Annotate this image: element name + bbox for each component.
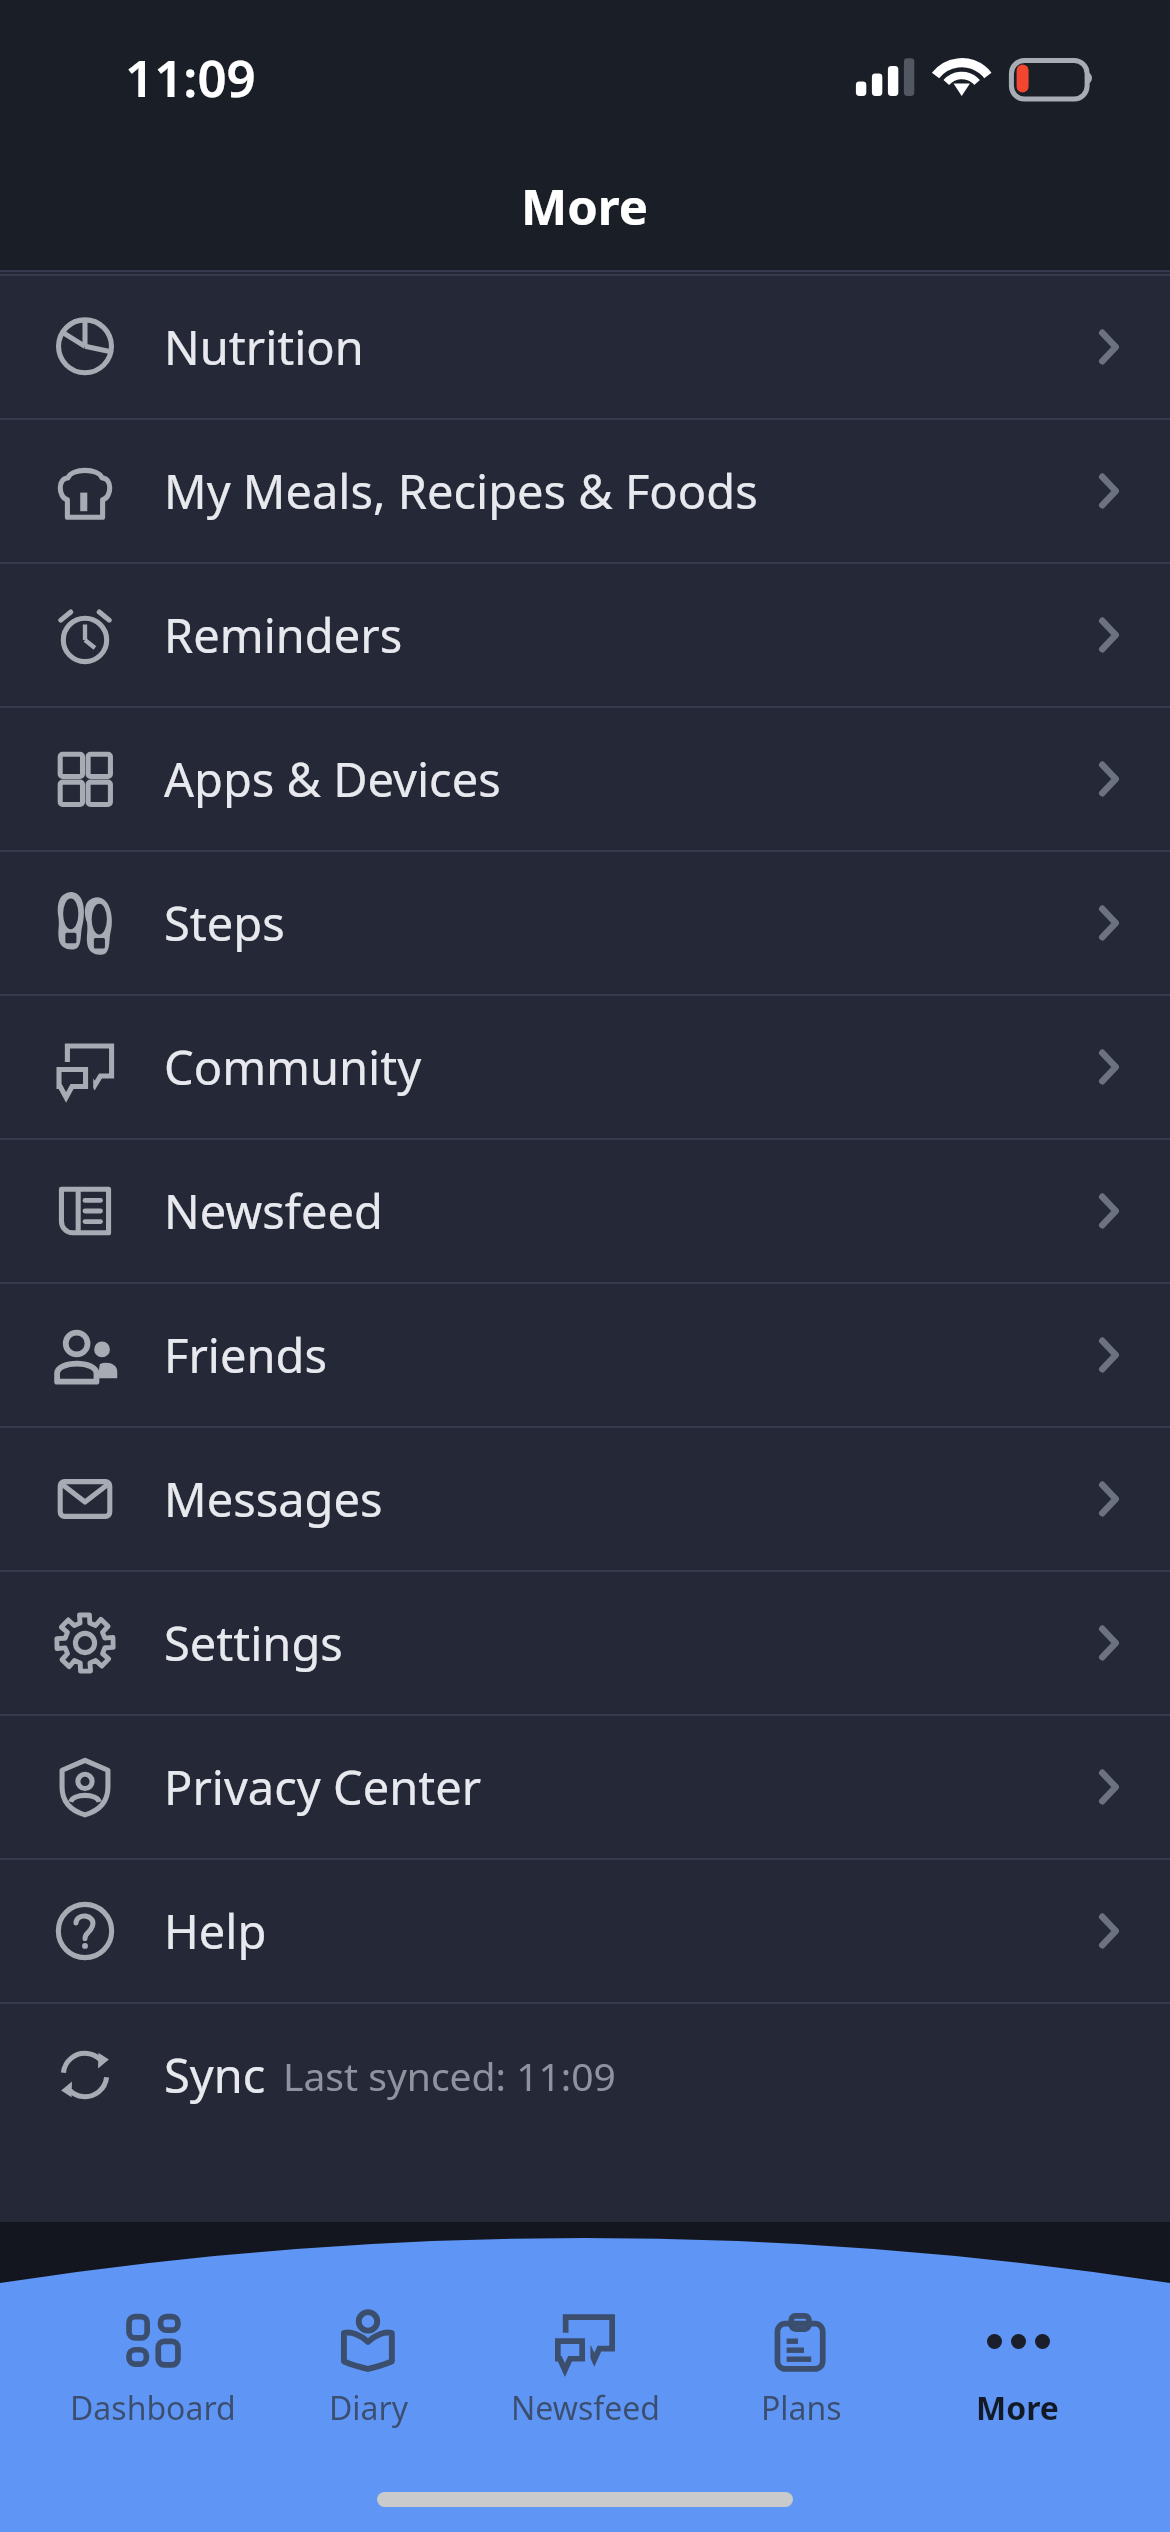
staticText: Diary <box>329 2386 409 2430</box>
button[interactable]: Friends <box>0 1284 1170 1426</box>
button[interactable]: Help <box>0 1860 1170 2002</box>
button[interactable]: Steps <box>0 852 1170 994</box>
staticText: Steps <box>164 891 285 955</box>
staticText: 11:09 <box>125 42 256 111</box>
button[interactable]: Apps & Devices <box>0 708 1170 850</box>
staticText: More <box>521 173 649 240</box>
button[interactable]: Nutrition <box>0 276 1170 418</box>
button[interactable]: Reminders <box>0 564 1170 706</box>
button[interactable]: Settings <box>0 1572 1170 1714</box>
button[interactable]: My Meals, Recipes & Foods <box>0 420 1170 562</box>
staticText: Newsfeed <box>164 1179 383 1243</box>
button[interactable]: Plans <box>693 2308 909 2430</box>
staticText: Settings <box>164 1611 343 1675</box>
staticText: Privacy Center <box>164 1755 482 1819</box>
staticText: Reminders <box>164 603 403 667</box>
button[interactable]: Newsfeed <box>0 1140 1170 1282</box>
staticText: Sync <box>164 2043 266 2107</box>
button[interactable]: Privacy Center <box>0 1716 1170 1858</box>
button[interactable]: Dashboard <box>45 2308 261 2430</box>
staticText: Dashboard <box>70 2386 236 2430</box>
button[interactable]: Newsfeed <box>477 2308 693 2430</box>
staticText: Community <box>164 1035 422 1099</box>
staticText: Friends <box>164 1323 327 1387</box>
staticText: Nutrition <box>164 315 364 379</box>
button[interactable]: Diary <box>261 2308 477 2430</box>
staticText: My Meals, Recipes & Foods <box>164 459 758 523</box>
button[interactable]: Sync <box>0 2004 1170 2146</box>
staticText: Plans <box>761 2386 842 2430</box>
button[interactable]: Messages <box>0 1428 1170 1570</box>
staticText: Messages <box>164 1467 383 1531</box>
staticText: More <box>976 2386 1059 2430</box>
staticText: Newsfeed <box>511 2386 660 2430</box>
button[interactable]: More <box>909 2308 1125 2430</box>
staticText: Help <box>164 1899 267 1963</box>
staticText: Apps & Devices <box>164 747 501 811</box>
staticText: Last synced: 11:09 <box>283 2049 616 2102</box>
button[interactable]: Community <box>0 996 1170 1138</box>
